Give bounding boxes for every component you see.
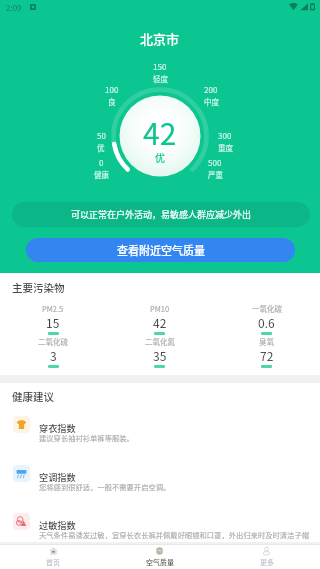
staticText: 0 [99,157,104,169]
staticText: 过敏指数 [39,518,76,531]
button[interactable]: 查看附近空气质量 [26,238,295,262]
staticText: 查看附近空气质量 [117,242,205,258]
staticText: 300 [218,130,232,142]
staticText: 更多 [260,557,274,567]
staticText: 42 [153,314,167,331]
staticText: 健康 [94,169,109,180]
staticText: 重度 [218,142,233,153]
staticText: 500 [208,157,222,169]
staticText: PM2.5 [42,303,64,314]
staticText: 轻度 [153,73,168,84]
button[interactable]: 空气质量 [106,545,213,569]
staticText: 72 [260,347,274,364]
staticText: 150 [153,61,167,73]
staticText: 健康建议 [12,389,54,404]
staticText: 100 [105,84,119,96]
staticText: 良 [108,96,116,107]
staticText: 3 [50,347,57,364]
staticText: 首页 [46,557,60,567]
staticText: 北京市 [140,29,180,48]
staticText: 穿衣指数 [39,421,76,434]
staticText: 50 [97,130,106,142]
staticText: 200 [204,84,218,96]
button[interactable]: 可以正常在户外活动，易敏感人群应减少外出 [12,202,310,227]
staticText: 0.6 [258,314,275,331]
staticText: 优 [155,150,165,164]
staticText: 臭氧 [259,336,274,347]
button[interactable]: 首页 [0,545,106,569]
staticText: 天气条件易诱发过敏，宜穿长衣长裤并佩戴好眼镜和口罩，外出归来时及时清洁子帽 [39,530,309,541]
staticText: 空调指数 [39,470,76,483]
staticText: 优 [97,142,105,153]
staticText: 二氧化氮 [145,336,175,347]
staticText: 42 [143,110,177,153]
staticText: 主要污染物 [12,280,65,295]
staticText: 二氧化硫 [38,336,68,347]
staticText: 您将感到很舒适，一般不需要开启空调。 [39,482,171,493]
staticText: 2:09 [6,2,22,14]
staticText: 建议穿长袖衬衫单裤等服装。 [39,433,134,444]
button[interactable]: 更多 [213,545,320,569]
button[interactable]: 空调指数 [0,462,320,492]
staticText: 可以正常在户外活动，易敏感人群应减少外出 [71,208,252,221]
staticText: 严重 [208,169,223,180]
staticText: 35 [153,347,167,364]
staticText: 15 [46,314,60,331]
staticText: 一氧化碳 [252,303,282,314]
button[interactable]: 穿衣指数 [0,413,320,443]
staticText: PM10 [150,303,170,314]
staticText: 空气质量 [146,557,174,567]
staticText: 中度 [204,96,219,107]
button[interactable]: 过敏指数 [0,510,320,540]
